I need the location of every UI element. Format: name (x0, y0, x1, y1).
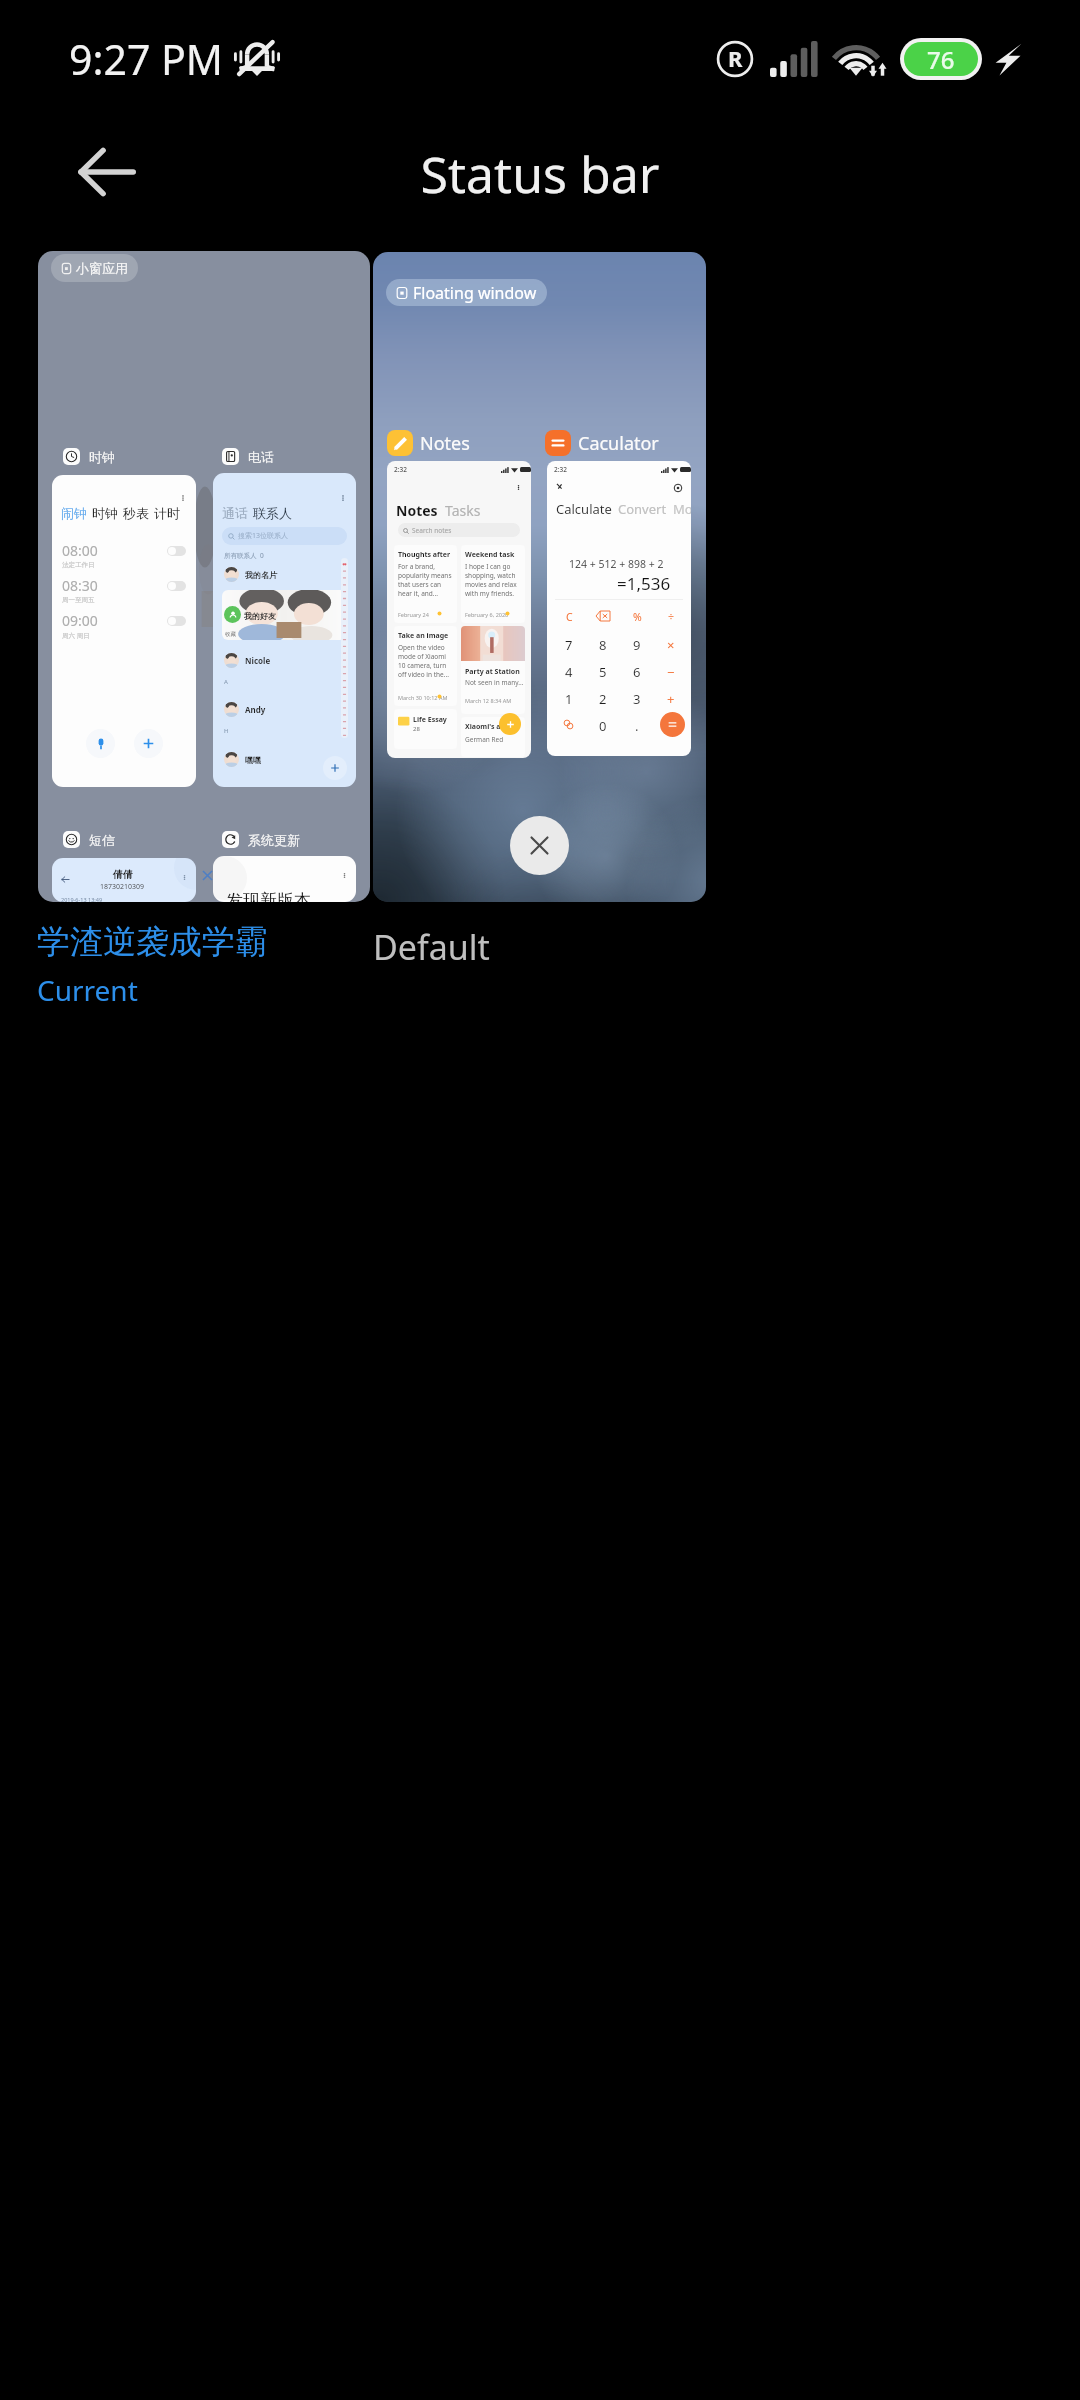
staticText: Xiaomi's aw (465, 722, 507, 732)
staticText: 2019-6-13 13:49 (61, 896, 103, 902)
staticText: 所有联系人 0 (224, 551, 264, 560)
staticText: 时钟 (92, 505, 118, 521)
staticText: 联系人 (253, 505, 292, 521)
staticText: 倩倩 (113, 868, 133, 881)
staticText: 收藏 (225, 631, 236, 638)
staticText: Mort (673, 500, 691, 518)
staticText: Notes (420, 431, 470, 456)
staticText: February 6, 2020 (465, 611, 509, 618)
staticText: 9:27 PM (69, 31, 223, 87)
staticText: 76 (927, 43, 955, 76)
staticText: 0 (599, 717, 607, 733)
staticText: 嘿嘿 (245, 755, 261, 765)
staticText: % (633, 610, 642, 624)
staticText: 电话 (248, 449, 274, 465)
staticText: For a brand, popularity means that users… (398, 562, 452, 598)
staticText: 28 (413, 725, 420, 733)
staticText: 2:32 (554, 465, 567, 474)
staticText: 小窗应用 (76, 260, 128, 276)
staticText: 短信 (89, 832, 115, 848)
staticText: March 30 10:12 AM (398, 694, 448, 701)
button[interactable]: Floating window (373, 252, 706, 902)
staticText: − (667, 663, 675, 679)
staticText: + (667, 690, 675, 706)
staticText: 计时 (154, 505, 180, 521)
staticText: 2 (599, 690, 607, 706)
staticText: 系统更新 (248, 832, 300, 848)
staticText: Current (37, 971, 138, 1009)
staticText: 4 (565, 663, 573, 679)
staticText: 7 (565, 636, 573, 652)
button[interactable]: Back (64, 130, 148, 214)
staticText: 3 (633, 690, 641, 706)
staticText: 秒表 (123, 505, 149, 521)
staticText: 9 (633, 636, 641, 652)
staticText: German Red (465, 735, 504, 744)
staticText: 1 (565, 690, 573, 706)
staticText: A (224, 678, 228, 686)
staticText: 通话 (222, 505, 248, 521)
staticText: 我的名片 (245, 570, 277, 580)
staticText: I hope I can go shopping, watch movies a… (465, 562, 517, 598)
staticText: ÷ (668, 610, 675, 624)
staticText: Open the video mode of Xiaomi 10 camera,… (398, 643, 449, 679)
staticText: Weekend task (465, 550, 515, 560)
staticText: Nicole (245, 655, 271, 666)
staticText: Status bar (0, 140, 1080, 208)
staticText: Not seen in many... (465, 678, 524, 687)
staticText: H (224, 727, 229, 735)
staticText: March 12 8:34 AM (465, 697, 512, 704)
staticText: 08:00 (62, 541, 98, 560)
staticText: Default (373, 924, 490, 970)
staticText: C (566, 610, 573, 624)
staticText: Caculator (578, 431, 659, 456)
staticText: 周一至周五 (62, 596, 95, 604)
staticText: 2:32 (394, 465, 407, 474)
staticText: 闹钟 (61, 505, 87, 521)
staticText: February 24 (398, 611, 429, 618)
staticText: 时钟 (89, 449, 115, 465)
staticText: Thoughts after (398, 550, 451, 560)
staticText: 124 + 512 + 898 + 2 (569, 557, 664, 571)
staticText: 8 (599, 636, 607, 652)
staticText: 我的好友 (244, 611, 276, 621)
staticText: 09:00 (62, 611, 98, 630)
staticText: 5 (599, 663, 607, 679)
staticText: 搜索13位联系人 (238, 531, 289, 541)
staticText: . (635, 717, 639, 733)
staticText: R (728, 43, 743, 73)
staticText: Floating window (413, 282, 537, 304)
staticText: Notes (396, 501, 438, 520)
staticText: Search notes (412, 526, 452, 535)
staticText: Convert (618, 500, 667, 518)
button[interactable]: 小窗应用 (38, 251, 370, 902)
staticText: 发现新版本 (226, 890, 311, 902)
staticText: Andy (245, 704, 266, 715)
staticText: 6 (633, 663, 641, 679)
staticText: 18730210309 (100, 882, 145, 892)
staticText: 周六 周日 (62, 631, 90, 640)
staticText: Party at Station (465, 667, 520, 677)
staticText: Calculate (556, 500, 612, 518)
staticText: Tasks (445, 501, 481, 520)
staticText: 08:30 (62, 576, 98, 595)
staticText: × (667, 636, 675, 652)
staticText: Take an image (398, 631, 449, 641)
button[interactable]: Close (510, 816, 569, 875)
staticText: =1,536 (617, 572, 671, 595)
staticText: Life Essay (413, 715, 447, 725)
staticText: 法定工作日 (62, 561, 95, 569)
staticText: 学渣逆袭成学霸 (37, 921, 268, 963)
